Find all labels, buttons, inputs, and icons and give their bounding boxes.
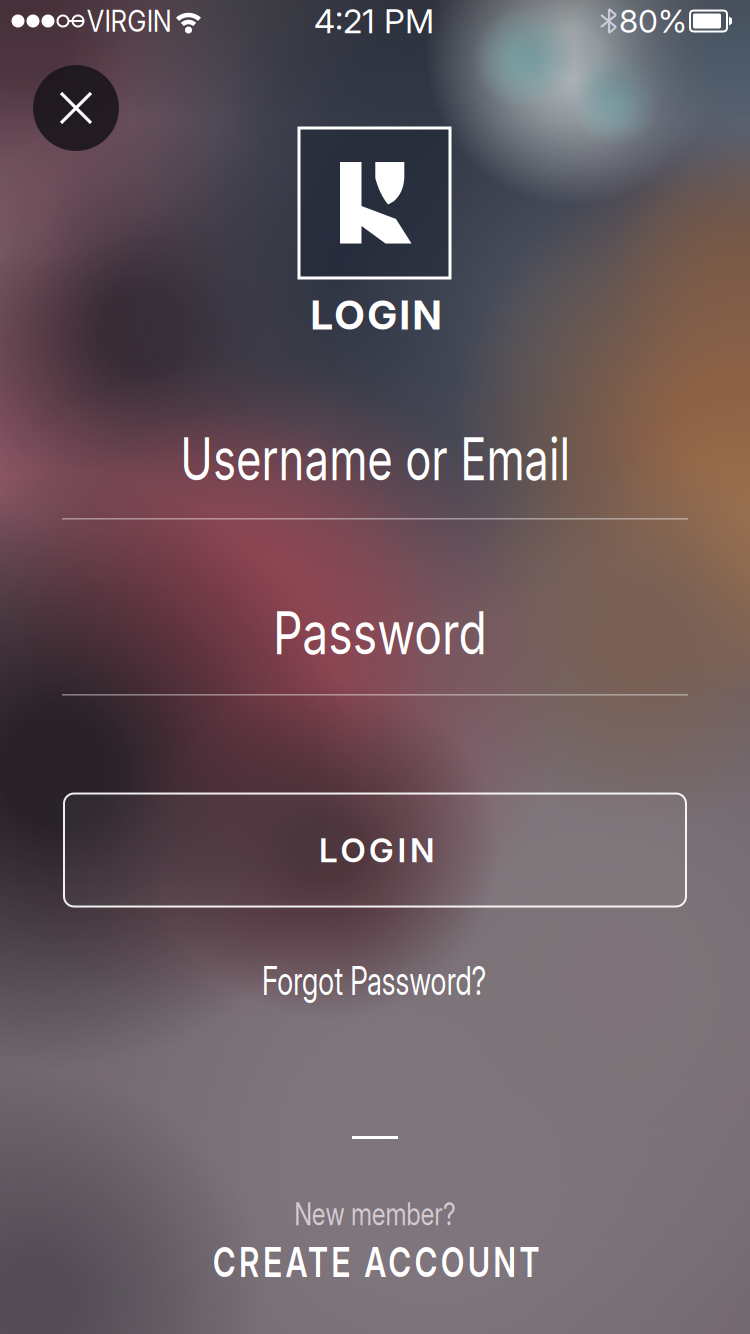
staticText: 4:21 PM bbox=[314, 1, 434, 41]
button[interactable]: Username or Email bbox=[62, 411, 688, 521]
staticText: 80% bbox=[619, 2, 687, 40]
button[interactable]: CREATE ACCOUNT bbox=[142, 1228, 609, 1296]
staticText: Forgot Password? bbox=[220, 958, 527, 1004]
button[interactable]: Close bbox=[33, 65, 119, 151]
button[interactable]: LOGIN bbox=[64, 793, 686, 906]
staticText: New member? bbox=[274, 1196, 476, 1232]
button[interactable]: Forgot Password? bbox=[200, 948, 547, 1014]
staticText: Password bbox=[244, 598, 515, 668]
staticText: LOGIN bbox=[319, 830, 435, 870]
staticText: CREATE ACCOUNT bbox=[158, 1238, 593, 1286]
button[interactable]: Password bbox=[62, 587, 688, 697]
staticText: LOGIN bbox=[310, 291, 441, 339]
staticText: Username or Email bbox=[113, 424, 636, 494]
staticText: VIRGIN bbox=[81, 4, 178, 38]
